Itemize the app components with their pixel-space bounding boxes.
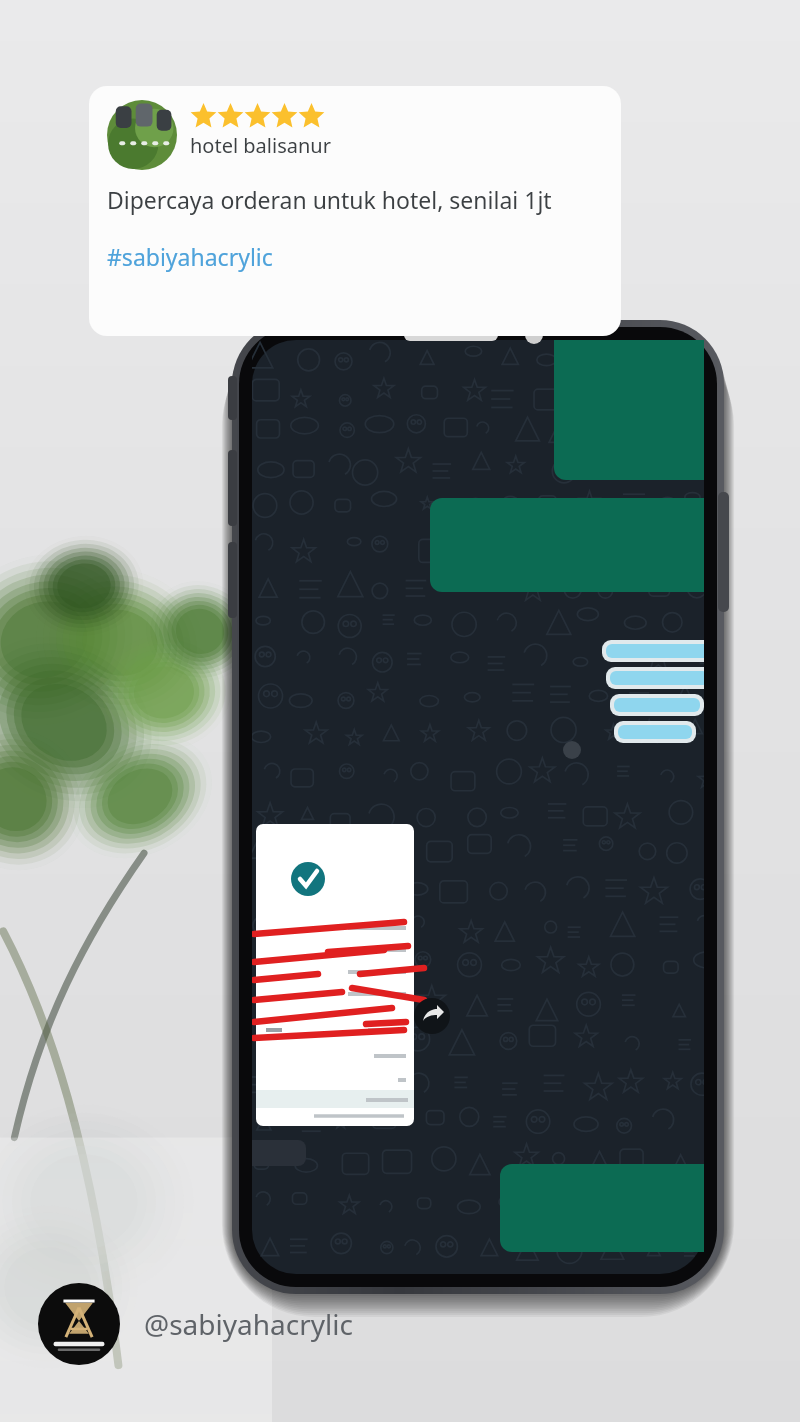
staticText: @sabiyahacrylic [144, 1305, 353, 1343]
staticText: hotel balisanur [190, 132, 331, 159]
button[interactable]: Sabiyah Acrylic profile [38, 1283, 353, 1365]
button[interactable]: #sabiyahacrylic [107, 241, 273, 272]
staticText: Dipercaya orderan untuk hotel, senilai 1… [107, 184, 552, 215]
button[interactable]: hotel balisanur [89, 86, 621, 336]
